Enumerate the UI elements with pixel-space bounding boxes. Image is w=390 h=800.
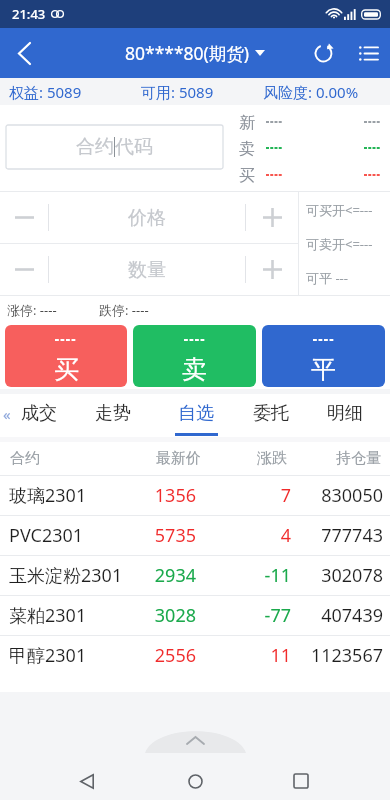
button[interactable]: Expand (145, 725, 246, 753)
staticText: 卖 (239, 139, 255, 157)
staticText: 302078 (321, 563, 383, 588)
button[interactable]: Refresh (300, 28, 346, 78)
staticText: 价格 (128, 206, 166, 230)
staticText: 风险度: 0.00% (263, 82, 359, 102)
button[interactable]: Previous tabs (0, 394, 14, 437)
staticText: 跌停: ---- (99, 301, 149, 319)
staticText: 可买开<=--- (306, 201, 373, 219)
staticText: 玻璃2301 (9, 483, 87, 508)
staticText: 走势 (95, 402, 131, 425)
button[interactable]: Back (0, 28, 48, 78)
staticText: 1356 (116, 483, 196, 508)
staticText: 自选 (178, 402, 214, 425)
staticText: 合约 (10, 449, 40, 468)
button[interactable]: 甲醇2301 (0, 636, 390, 675)
staticText: 平 (311, 354, 336, 385)
staticText: 可用: 5089 (141, 82, 214, 102)
staticText: 代码 (115, 135, 153, 159)
staticText: PVC2301 (9, 523, 84, 548)
staticText: 玉米淀粉2301 (9, 563, 123, 588)
staticText: 80****80(期货) (125, 41, 250, 65)
button[interactable]: 成交 (2, 394, 76, 437)
staticText: 777743 (321, 523, 383, 548)
staticText: 1123567 (310, 643, 383, 668)
button[interactable]: 合约 (6, 125, 223, 169)
staticText: -11 (211, 563, 291, 588)
button[interactable]: 数量 (0, 244, 298, 295)
staticText: 涨跌 (207, 449, 287, 468)
staticText: 买 (239, 166, 255, 184)
staticText: 涨停: ---- (7, 301, 57, 319)
button[interactable]: Recents (279, 762, 323, 800)
staticText: 3028 (116, 603, 196, 628)
staticText: 菜粕2301 (9, 603, 87, 628)
staticText: 权益: 5089 (9, 82, 82, 102)
staticText: 4 (211, 523, 291, 548)
staticText: 可平 --- (306, 269, 348, 287)
staticText: 明细 (327, 402, 363, 425)
staticText: 买 (54, 354, 79, 385)
button[interactable]: Menu (346, 28, 390, 78)
staticText: -77 (211, 603, 291, 628)
staticText: 甲醇2301 (9, 643, 87, 668)
button[interactable]: 自选 (159, 394, 233, 437)
staticText: 持仓量 (336, 449, 381, 468)
staticText: 可卖开<=--- (306, 235, 373, 253)
button[interactable]: 玉米淀粉2301 (0, 556, 390, 595)
button[interactable]: 价格 (0, 192, 298, 243)
staticText: 21:43 (12, 5, 46, 23)
staticText: 7 (211, 483, 291, 508)
button[interactable]: PVC2301 (0, 516, 390, 555)
staticText: 5735 (116, 523, 196, 548)
button[interactable]: 卖 (133, 325, 256, 387)
button[interactable]: 菜粕2301 (0, 596, 390, 635)
button[interactable]: 玻璃2301 (0, 476, 390, 515)
staticText: 11 (211, 643, 291, 668)
staticText: 2934 (116, 563, 196, 588)
staticText: 2556 (116, 643, 196, 668)
staticText: 成交 (21, 402, 57, 425)
button[interactable]: 走势 (76, 394, 150, 437)
button[interactable]: Back (65, 762, 109, 800)
staticText: 最新价 (121, 449, 201, 468)
staticText: 委托 (253, 402, 289, 425)
button[interactable]: 平 (262, 325, 385, 387)
button[interactable]: 80****80(期货) (125, 41, 265, 65)
staticText: 数量 (128, 258, 166, 282)
staticText: 合约 (76, 135, 114, 159)
staticText: 830050 (321, 483, 383, 508)
button[interactable]: 明细 (308, 394, 382, 437)
button[interactable]: Home (173, 762, 217, 800)
staticText: 407439 (321, 603, 383, 628)
button[interactable]: 买 (5, 325, 127, 387)
staticText: « (3, 404, 11, 424)
staticText: 新 (239, 113, 255, 131)
button[interactable]: 委托 (234, 394, 308, 437)
staticText: 卖 (182, 354, 207, 385)
